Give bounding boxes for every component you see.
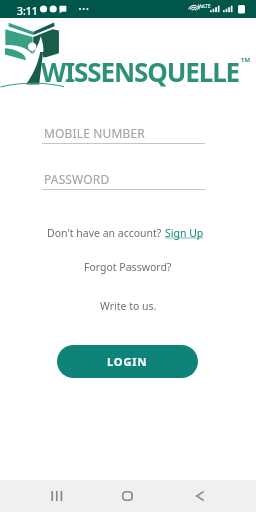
- staticText: LOGIN: [107, 354, 148, 369]
- staticText: Forgot Password?: [84, 260, 172, 274]
- button[interactable]: LOGIN: [57, 345, 198, 378]
- button[interactable]: Home: [111, 480, 144, 512]
- staticText: Write to us.: [100, 299, 157, 313]
- staticText: Don't have an account?: [47, 226, 162, 240]
- staticText: Sign Up: [165, 226, 204, 240]
- staticText: TM: [241, 56, 251, 64]
- button[interactable]: Forgot Password?: [84, 260, 172, 274]
- staticText: VoLTE: [198, 3, 211, 9]
- button[interactable]: Write to us.: [100, 299, 157, 313]
- staticText: PASSWORD: [44, 171, 110, 187]
- button[interactable]: Sign Up: [165, 226, 204, 240]
- button[interactable]: Recent apps: [40, 480, 73, 512]
- staticText: 3:11: [17, 4, 38, 18]
- staticText: WISSENSQUELLE: [41, 54, 240, 89]
- button[interactable]: Back: [183, 480, 216, 512]
- staticText: MOBILE NUMBER: [44, 125, 145, 141]
